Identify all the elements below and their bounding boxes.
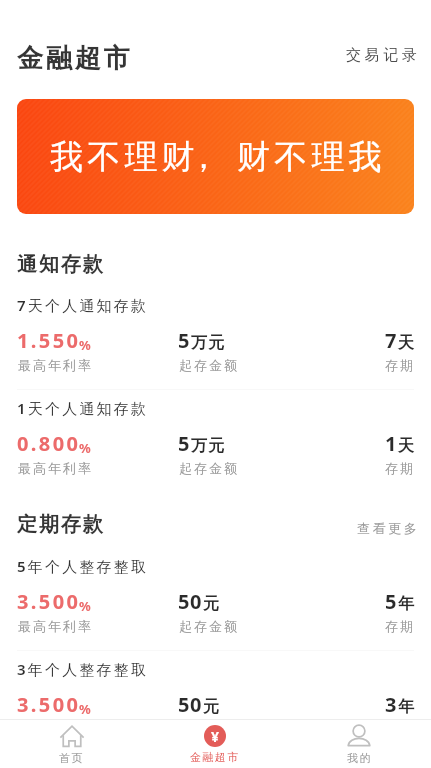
staticText: 5年个人整存整取 <box>17 556 149 576</box>
staticText: 存期 <box>384 460 414 476</box>
button[interactable]: 5年个人整存整取 <box>0 546 431 642</box>
staticText: % <box>79 700 91 718</box>
staticText: 万元 <box>191 333 226 353</box>
staticText: 7 <box>385 327 398 354</box>
staticText: 7天个人通知存款 <box>17 295 149 315</box>
staticText: 首页 <box>59 751 84 765</box>
staticText: ¥ <box>211 727 220 746</box>
staticText: % <box>79 336 91 354</box>
staticText: 1 <box>385 430 398 457</box>
staticText: 最高年利率 <box>17 357 92 373</box>
staticText: 起存金额 <box>178 357 238 373</box>
staticText: 50 <box>178 691 203 718</box>
staticText: 存期 <box>384 357 414 373</box>
staticText: % <box>79 597 91 615</box>
staticText: 财不理我 <box>237 136 386 178</box>
staticText: 存期 <box>384 618 414 634</box>
button[interactable]: 1天个人通知存款 <box>0 388 431 484</box>
staticText: 起存金额 <box>178 460 238 476</box>
button[interactable]: Financial market <box>143 720 287 768</box>
staticText: % <box>79 439 91 457</box>
staticText: 天 <box>398 333 414 353</box>
staticText: 5 <box>178 327 191 354</box>
staticText: 万元 <box>191 436 226 456</box>
staticText: 1天个人通知存款 <box>17 398 149 418</box>
staticText: ， <box>187 136 225 178</box>
button[interactable]: Home <box>0 720 143 768</box>
staticText: 50 <box>178 588 203 615</box>
staticText: 起存金额 <box>178 721 238 737</box>
staticText: 元 <box>203 697 221 717</box>
button[interactable]: Profile <box>287 720 431 768</box>
button[interactable]: 交易记录 <box>330 38 431 73</box>
button[interactable]: 3年个人整存整取 <box>0 649 431 745</box>
staticText: 元 <box>203 594 221 614</box>
staticText: 0.800 <box>17 430 81 457</box>
staticText: 天 <box>398 436 414 456</box>
staticText: 起存金额 <box>178 618 238 634</box>
staticText: 最高年利率 <box>17 721 92 737</box>
staticText: 金融超市 <box>17 42 133 75</box>
button[interactable]: 7天个人通知存款 <box>0 285 431 381</box>
staticText: 3年个人整存整取 <box>17 659 149 679</box>
staticText: 1.550 <box>17 327 81 354</box>
staticText: 3 <box>385 691 398 718</box>
staticText: 交易记录 <box>346 46 421 65</box>
staticText: 3.500 <box>17 588 81 615</box>
staticText: 5 <box>178 430 191 457</box>
button[interactable]: 我不理财 <box>17 99 414 214</box>
staticText: 5 <box>385 588 398 615</box>
staticText: 年 <box>398 594 414 614</box>
staticText: 通知存款 <box>17 252 105 277</box>
staticText: 最高年利率 <box>17 460 92 476</box>
staticText: 金融超市 <box>190 750 240 764</box>
button[interactable]: 查看更多 <box>341 514 431 542</box>
staticText: 定期存款 <box>17 512 105 537</box>
staticText: 最高年利率 <box>17 618 92 634</box>
staticText: 年 <box>398 697 414 717</box>
staticText: 我不理财 <box>50 136 199 178</box>
staticText: 我的 <box>347 751 372 765</box>
staticText: 查看更多 <box>357 520 420 536</box>
staticText: 3.500 <box>17 691 81 718</box>
